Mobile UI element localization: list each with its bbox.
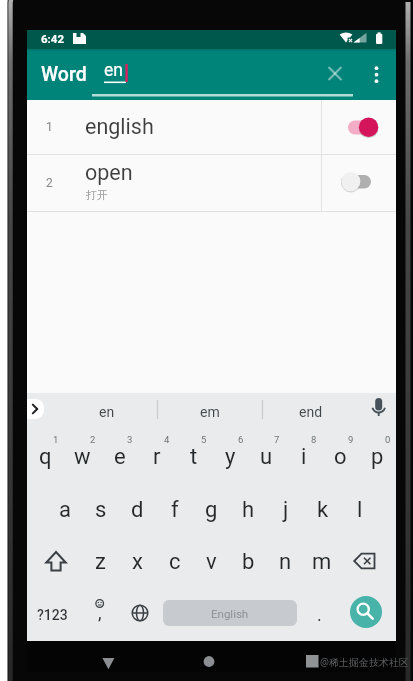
staticText: end <box>299 404 323 420</box>
button[interactable]: y <box>212 430 249 483</box>
staticText: open <box>85 160 133 185</box>
staticText: ?123 <box>37 607 68 623</box>
button[interactable]: p <box>359 430 396 483</box>
staticText: i <box>301 444 307 470</box>
button[interactable]: r <box>138 430 175 483</box>
button[interactable] <box>293 647 331 677</box>
staticText: 4 <box>164 434 170 445</box>
button[interactable] <box>360 57 392 89</box>
button[interactable]: s <box>82 483 119 536</box>
staticText: , <box>98 602 102 623</box>
staticText: 8 <box>311 434 317 445</box>
staticText: n <box>279 549 292 575</box>
staticText: d <box>131 497 144 523</box>
staticText: 3 <box>127 434 133 445</box>
staticText: 1 <box>53 434 59 445</box>
staticText: z <box>95 549 106 575</box>
staticText: u <box>260 444 273 470</box>
button[interactable]: . <box>304 594 334 634</box>
button[interactable]: z <box>82 535 119 588</box>
staticText: 6 <box>238 434 244 445</box>
button[interactable] <box>341 535 396 588</box>
staticText: en <box>104 60 123 81</box>
staticText: x <box>132 549 143 575</box>
button[interactable] <box>27 535 82 588</box>
staticText: l <box>357 497 363 523</box>
button[interactable]: k <box>304 483 341 536</box>
button[interactable]: a <box>46 483 83 536</box>
button[interactable]: x <box>119 535 156 588</box>
staticText: f <box>171 497 179 523</box>
button[interactable] <box>119 588 161 641</box>
staticText: em <box>200 404 220 420</box>
staticText: b <box>242 549 255 575</box>
button[interactable]: t <box>175 430 212 483</box>
staticText: 7 <box>274 434 280 445</box>
staticText: 2 <box>46 176 53 190</box>
button[interactable]: c <box>156 535 193 588</box>
staticText: h <box>242 497 255 523</box>
button[interactable]: v <box>193 535 230 588</box>
button[interactable] <box>337 168 377 196</box>
staticText: o <box>334 444 347 470</box>
staticText: v <box>206 549 217 575</box>
button[interactable] <box>90 647 128 677</box>
button[interactable]: l <box>341 483 378 536</box>
button[interactable] <box>27 100 396 154</box>
staticText: 打开 <box>86 188 108 202</box>
button[interactable]: n <box>267 535 304 588</box>
button[interactable] <box>27 155 396 211</box>
button[interactable]: em <box>158 393 262 430</box>
staticText: w <box>74 444 91 470</box>
staticText: 1 <box>46 120 53 134</box>
staticText: m <box>312 549 332 575</box>
staticText: e <box>114 444 126 470</box>
staticText: y <box>225 444 236 470</box>
staticText: p <box>371 444 384 470</box>
button[interactable]: h <box>230 483 267 536</box>
button[interactable]: j <box>267 483 304 536</box>
staticText: 2 <box>90 434 96 445</box>
staticText: en <box>99 404 115 420</box>
staticText: Word <box>41 63 87 86</box>
staticText: k <box>317 497 329 523</box>
staticText: English <box>211 607 249 620</box>
button[interactable]: d <box>119 483 156 536</box>
staticText: 9 <box>348 434 354 445</box>
staticText: s <box>95 497 107 523</box>
staticText: q <box>39 444 52 470</box>
button[interactable]: e <box>101 430 138 483</box>
button[interactable]: o <box>322 430 359 483</box>
staticText: a <box>59 497 71 523</box>
staticText: 5 <box>201 434 207 445</box>
button[interactable] <box>190 647 228 677</box>
staticText: . <box>317 604 322 625</box>
button[interactable]: English <box>163 600 297 626</box>
staticText: 6:42 <box>41 32 65 45</box>
button[interactable]: end <box>262 393 360 430</box>
button[interactable]: en <box>57 393 157 430</box>
button[interactable] <box>27 399 44 419</box>
button[interactable]: g <box>193 483 230 536</box>
staticText: g <box>205 497 218 523</box>
button[interactable]: b <box>230 535 267 588</box>
staticText: j <box>283 497 289 523</box>
button[interactable] <box>350 596 382 628</box>
button[interactable]: i <box>285 430 322 483</box>
button[interactable] <box>344 113 384 141</box>
button[interactable]: , <box>82 588 119 641</box>
button[interactable] <box>319 57 351 89</box>
staticText: c <box>169 549 181 575</box>
button[interactable]: q <box>27 430 64 483</box>
staticText: english <box>85 114 154 139</box>
button[interactable]: f <box>156 483 193 536</box>
button[interactable] <box>364 393 394 425</box>
staticText: r <box>153 444 161 470</box>
button[interactable]: ?123 <box>27 588 77 641</box>
button[interactable]: m <box>303 535 340 588</box>
staticText: 0 <box>385 434 391 445</box>
button[interactable]: w <box>64 430 101 483</box>
staticText: t <box>190 444 198 470</box>
staticText: @稀土掘金技术社区 <box>320 655 409 669</box>
button[interactable]: u <box>248 430 285 483</box>
